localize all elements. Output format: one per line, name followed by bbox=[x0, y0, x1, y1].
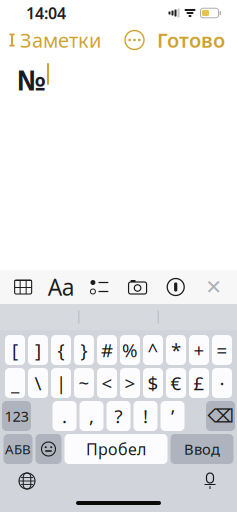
button[interactable]: * bbox=[166, 335, 186, 365]
button[interactable]: # bbox=[97, 335, 117, 365]
staticText: £ bbox=[193, 371, 204, 395]
staticText: # bbox=[101, 338, 113, 362]
staticText: ✕ bbox=[205, 276, 222, 298]
button[interactable]: [ bbox=[5, 335, 25, 365]
button[interactable]: Диктовка bbox=[195, 468, 225, 494]
button[interactable]: Готово bbox=[149, 22, 237, 58]
staticText: Готово bbox=[157, 27, 225, 53]
button[interactable]: Пробел bbox=[64, 434, 167, 464]
staticText: № bbox=[17, 61, 46, 98]
staticText: ? bbox=[114, 404, 122, 428]
button[interactable]: Таблица bbox=[8, 272, 38, 302]
button[interactable]: ] bbox=[28, 335, 48, 365]
staticText: Заметки bbox=[20, 27, 101, 53]
button[interactable]: Дополнительно bbox=[120, 25, 149, 54]
button[interactable]: АБВ bbox=[3, 434, 32, 464]
button[interactable]: ’ bbox=[160, 401, 184, 431]
staticText: Ввод bbox=[184, 439, 220, 459]
button[interactable]: > bbox=[120, 368, 140, 398]
staticText: ^ bbox=[147, 338, 158, 362]
button[interactable]: \ bbox=[28, 368, 48, 398]
button[interactable]: ? bbox=[106, 401, 130, 431]
button[interactable]: Сменить язык bbox=[12, 468, 42, 494]
button[interactable]: % bbox=[120, 335, 140, 365]
button[interactable]: . bbox=[52, 401, 76, 431]
button[interactable]: | bbox=[51, 368, 71, 398]
button[interactable]: Эмодзи bbox=[35, 434, 61, 464]
staticText: { bbox=[57, 338, 64, 362]
staticText: 14:04 bbox=[26, 2, 66, 24]
staticText: · bbox=[219, 371, 224, 395]
staticText: € bbox=[170, 371, 181, 395]
staticText: ’ bbox=[171, 404, 174, 428]
button[interactable]: 123 bbox=[2, 401, 31, 431]
button[interactable]: = bbox=[212, 335, 232, 365]
staticText: * bbox=[171, 338, 181, 362]
button[interactable]: Список bbox=[84, 272, 114, 302]
staticText: ~ bbox=[78, 371, 89, 395]
staticText: | bbox=[56, 371, 66, 395]
button[interactable]: Разметка bbox=[161, 272, 191, 302]
staticText: _ bbox=[11, 371, 19, 395]
staticText: ] bbox=[35, 338, 41, 362]
staticText: > bbox=[124, 371, 135, 395]
button[interactable]: Закрыть клавиатуру bbox=[199, 272, 229, 302]
button[interactable]: ! bbox=[133, 401, 157, 431]
staticText: Aa bbox=[48, 272, 75, 302]
staticText: + bbox=[193, 338, 204, 362]
staticText: АБВ bbox=[5, 440, 31, 458]
button[interactable]: Формат текста bbox=[46, 272, 76, 302]
staticText: } bbox=[80, 338, 87, 362]
button[interactable]: $ bbox=[143, 368, 163, 398]
staticText: < bbox=[101, 371, 112, 395]
button[interactable]: , bbox=[79, 401, 103, 431]
staticText: . bbox=[62, 404, 67, 428]
staticText: [ bbox=[12, 338, 18, 362]
button[interactable]: £ bbox=[189, 368, 209, 398]
button[interactable]: ^ bbox=[143, 335, 163, 365]
staticText: % bbox=[122, 338, 138, 362]
button[interactable]: € bbox=[166, 368, 186, 398]
button[interactable]: Ввод bbox=[170, 434, 233, 464]
button[interactable]: Удалить bbox=[206, 401, 235, 431]
button[interactable]: Заметки bbox=[0, 22, 101, 58]
button[interactable]: { bbox=[51, 335, 71, 365]
staticText: ⌫ bbox=[207, 405, 233, 427]
button[interactable]: ~ bbox=[74, 368, 94, 398]
staticText: Пробел bbox=[86, 438, 146, 460]
staticText: ! bbox=[143, 404, 148, 428]
staticText: 123 bbox=[4, 406, 28, 426]
button[interactable]: Камера bbox=[123, 272, 153, 302]
button[interactable]: } bbox=[74, 335, 94, 365]
staticText: = bbox=[216, 338, 227, 362]
staticText: \ bbox=[34, 371, 41, 395]
button[interactable]: _ bbox=[5, 368, 25, 398]
button[interactable]: + bbox=[189, 335, 209, 365]
button[interactable]: · bbox=[212, 368, 232, 398]
button[interactable]: < bbox=[97, 368, 117, 398]
staticText: , bbox=[89, 404, 94, 428]
staticText: $ bbox=[147, 371, 158, 395]
staticText: 19 декабря 2021 г. в 14:04 bbox=[43, 38, 194, 54]
